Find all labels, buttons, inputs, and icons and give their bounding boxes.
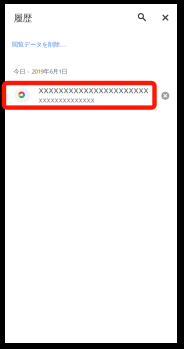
staticText: 今日 - 2019年6月1日 xyxy=(13,67,67,75)
button[interactable]: 閲覧データを削除... xyxy=(12,38,78,51)
button[interactable]: Close xyxy=(154,7,176,29)
staticText: 履歴 xyxy=(14,12,32,24)
button[interactable]: Remove from history xyxy=(156,87,174,105)
button[interactable]: Search xyxy=(131,6,153,28)
staticText: XXXXXXXXXXXXXXXXXXXXXX xyxy=(39,85,149,95)
staticText: 閲覧データを削除... xyxy=(12,40,66,48)
button[interactable]: XXXXXXXXXXXXXXXXXXXXXX xyxy=(2,81,157,110)
staticText: XXXXXXXXXXXXXX xyxy=(39,96,95,104)
